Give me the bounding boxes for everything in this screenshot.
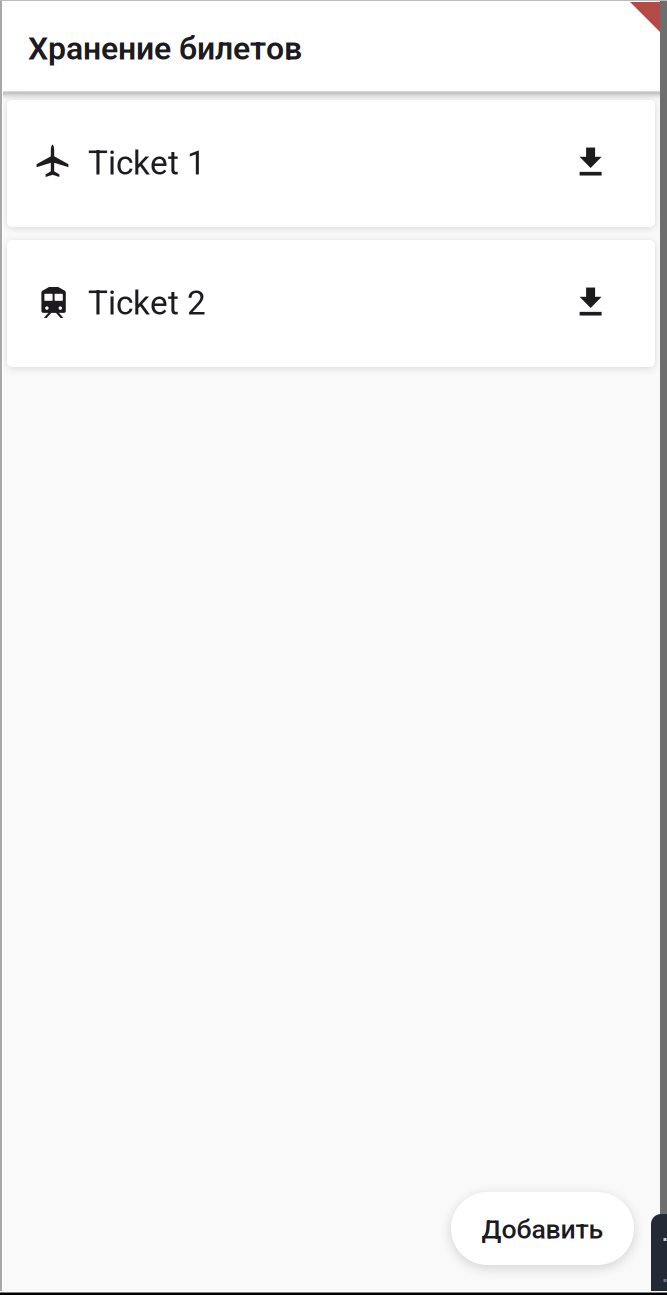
button[interactable]: Ticket 1	[7, 100, 655, 227]
button[interactable]: Ticket 2	[7, 240, 655, 367]
staticText: Хранение билетов	[28, 30, 302, 67]
button[interactable]: Добавить	[451, 1192, 634, 1265]
staticText: Ticket 1	[88, 143, 206, 183]
staticText: Добавить	[481, 1214, 603, 1245]
staticText: Ticket 2	[88, 283, 206, 323]
button[interactable]: Скачать Ticket 1	[561, 131, 621, 191]
button[interactable]: Скачать Ticket 2	[561, 271, 621, 331]
